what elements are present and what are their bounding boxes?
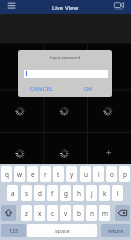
staticText: y — [70, 170, 74, 179]
button[interactable]: t — [53, 166, 64, 182]
staticText: z — [25, 209, 29, 218]
button[interactable]: i — [93, 166, 104, 182]
staticText: Input password — [50, 55, 81, 61]
staticText: 123 — [9, 227, 18, 234]
staticText: n — [90, 209, 94, 218]
staticText: m — [102, 209, 108, 218]
staticText: x — [38, 209, 42, 218]
button[interactable]: OK — [65, 80, 112, 95]
staticText: Live View — [52, 3, 79, 11]
staticText: OK — [84, 84, 93, 92]
staticText: v — [64, 209, 68, 218]
staticText: return — [108, 227, 124, 234]
staticText: f — [51, 189, 54, 198]
button[interactable]: h — [73, 185, 84, 201]
button[interactable]: u — [80, 166, 91, 182]
button[interactable]: c — [47, 205, 58, 221]
button[interactable]: v — [60, 205, 71, 221]
staticText: h — [77, 189, 81, 198]
staticText: p — [123, 170, 127, 179]
staticText: i — [98, 170, 100, 179]
button[interactable]: x — [34, 205, 45, 221]
staticText: d — [38, 189, 42, 198]
button[interactable]: m — [99, 205, 110, 221]
staticText: q — [5, 170, 9, 179]
button[interactable]: l — [112, 185, 123, 201]
staticText: b — [77, 209, 81, 218]
button[interactable]: p — [119, 166, 130, 182]
staticText: j — [91, 189, 93, 198]
staticText: l — [117, 189, 119, 198]
button[interactable]: f — [47, 185, 58, 201]
button[interactable]: r — [40, 166, 51, 182]
button[interactable] — [24, 70, 108, 78]
button[interactable]: o — [106, 166, 117, 182]
button[interactable]: k — [99, 185, 110, 201]
staticText: a — [11, 189, 15, 198]
staticText: u — [84, 170, 88, 179]
button[interactable]: Menu — [4, 0, 19, 14]
button[interactable]: return — [101, 224, 130, 237]
button[interactable]: q — [1, 166, 12, 182]
button[interactable]: z — [21, 205, 32, 221]
button[interactable]: Backspace — [115, 205, 130, 221]
button[interactable]: g — [60, 185, 71, 201]
button[interactable]: Record video — [112, 0, 127, 14]
staticText: r — [44, 170, 47, 179]
staticText: k — [103, 189, 107, 198]
button[interactable]: CANCEL — [18, 80, 65, 95]
staticText: g — [64, 189, 68, 198]
staticText: s — [25, 189, 29, 198]
button[interactable]: Shift — [1, 205, 16, 221]
button[interactable]: w — [14, 166, 25, 182]
button[interactable]: j — [86, 185, 97, 201]
staticText: t — [57, 170, 60, 179]
button[interactable]: y — [66, 166, 77, 182]
button[interactable]: e — [27, 166, 38, 182]
button[interactable]: s — [21, 185, 32, 201]
staticText: w — [17, 170, 23, 179]
button[interactable]: d — [34, 185, 45, 201]
button[interactable]: b — [73, 205, 84, 221]
button[interactable]: 123 — [1, 224, 26, 237]
button[interactable]: a — [7, 185, 18, 201]
staticText: CANCEL — [30, 84, 54, 92]
button[interactable]: n — [86, 205, 97, 221]
button[interactable]: space — [27, 224, 97, 237]
staticText: c — [51, 209, 55, 218]
staticText: space — [55, 227, 70, 234]
staticText: e — [31, 170, 35, 179]
staticText: o — [110, 170, 114, 179]
